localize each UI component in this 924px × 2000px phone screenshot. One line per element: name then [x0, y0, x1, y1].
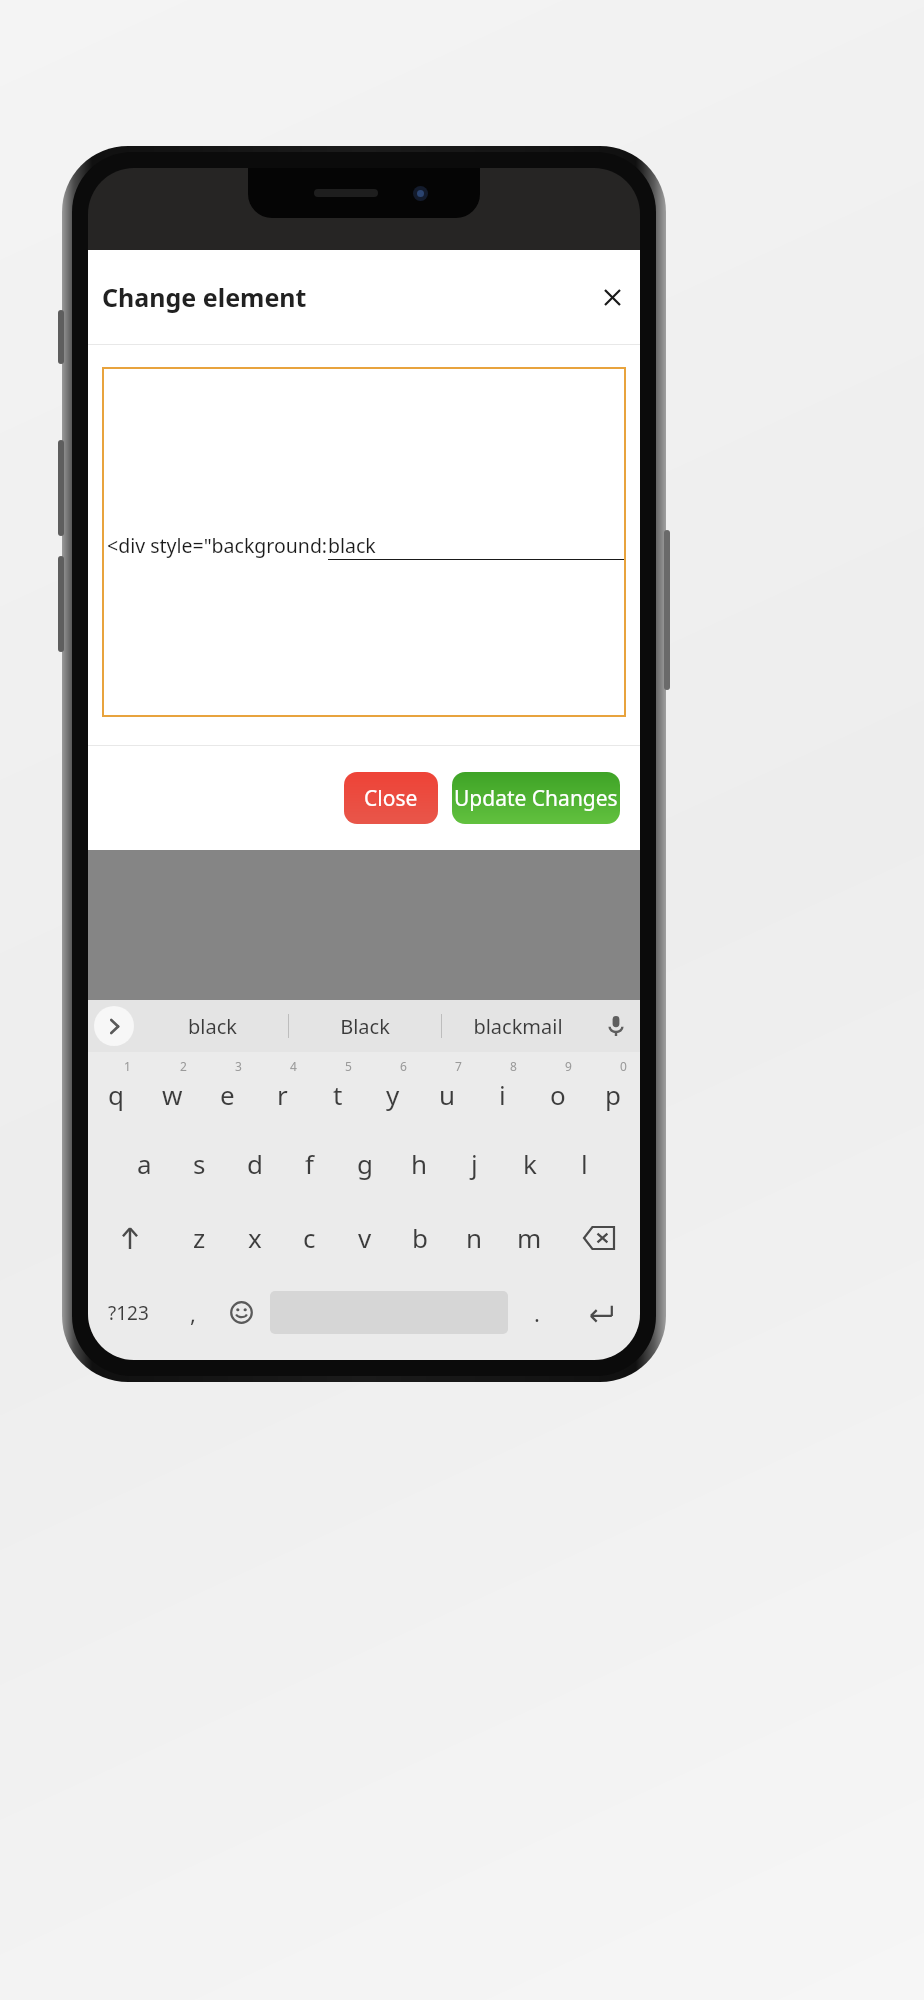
- staticText: ?123: [108, 1300, 149, 1326]
- staticText: m: [517, 1220, 542, 1255]
- staticText: v: [358, 1220, 372, 1255]
- staticText: black: [328, 532, 376, 559]
- button[interactable]: <div style="background:: [102, 367, 626, 717]
- button[interactable]: Voice input: [596, 1006, 636, 1046]
- button[interactable]: Black: [289, 1000, 441, 1052]
- button[interactable]: n: [447, 1200, 502, 1275]
- button[interactable]: Backspace: [557, 1200, 640, 1275]
- button[interactable]: 2: [144, 1052, 200, 1126]
- button[interactable]: a: [117, 1126, 172, 1200]
- staticText: g: [357, 1146, 373, 1181]
- staticText: a: [137, 1146, 152, 1181]
- button[interactable]: Close dialog: [590, 275, 634, 319]
- staticText: q: [108, 1077, 124, 1112]
- staticText: y: [386, 1077, 400, 1112]
- button[interactable]: h: [392, 1126, 447, 1200]
- staticText: Close: [364, 784, 418, 813]
- staticText: o: [550, 1077, 566, 1112]
- button[interactable]: Shift: [88, 1200, 172, 1275]
- staticText: 6: [400, 1058, 407, 1074]
- button[interactable]: s: [172, 1126, 227, 1200]
- staticText: j: [471, 1146, 478, 1181]
- staticText: black: [188, 1013, 237, 1040]
- staticText: 3: [235, 1058, 242, 1074]
- staticText: 9: [565, 1058, 572, 1074]
- staticText: s: [193, 1146, 206, 1181]
- staticText: t: [333, 1077, 343, 1112]
- staticText: w: [162, 1077, 183, 1112]
- button[interactable]: 1: [88, 1052, 144, 1126]
- staticText: 1: [124, 1058, 131, 1074]
- staticText: .: [534, 1298, 540, 1328]
- button[interactable]: .: [512, 1275, 561, 1350]
- button[interactable]: b: [392, 1200, 447, 1275]
- button[interactable]: j: [447, 1126, 502, 1200]
- button[interactable]: 3: [200, 1052, 255, 1126]
- staticText: ,: [190, 1298, 196, 1328]
- staticText: l: [581, 1146, 588, 1181]
- button[interactable]: v: [337, 1200, 392, 1275]
- staticText: p: [605, 1077, 621, 1112]
- button[interactable]: Enter: [561, 1275, 640, 1350]
- button[interactable]: k: [502, 1126, 557, 1200]
- button[interactable]: c: [282, 1200, 337, 1275]
- staticText: 7: [455, 1058, 462, 1074]
- button[interactable]: More suggestions: [94, 1006, 134, 1046]
- button[interactable]: Update Changes: [452, 772, 620, 824]
- staticText: d: [247, 1146, 263, 1181]
- button[interactable]: 9: [530, 1052, 585, 1126]
- staticText: x: [248, 1220, 262, 1255]
- button[interactable]: 4: [255, 1052, 310, 1126]
- staticText: i: [499, 1077, 506, 1112]
- staticText: n: [466, 1220, 483, 1255]
- staticText: blackmail: [473, 1013, 563, 1040]
- staticText: 0: [620, 1058, 627, 1074]
- staticText: u: [439, 1077, 456, 1112]
- staticText: z: [193, 1220, 206, 1255]
- button[interactable]: l: [557, 1126, 612, 1200]
- button[interactable]: black: [136, 1000, 288, 1052]
- button[interactable]: ,: [168, 1275, 217, 1350]
- staticText: 2: [180, 1058, 187, 1074]
- staticText: k: [523, 1146, 537, 1181]
- button[interactable]: 7: [420, 1052, 475, 1126]
- staticText: b: [412, 1220, 428, 1255]
- staticText: c: [303, 1220, 316, 1255]
- staticText: Black: [340, 1013, 390, 1040]
- button[interactable]: blackmail: [442, 1000, 594, 1052]
- staticText: h: [411, 1146, 428, 1181]
- button[interactable]: g: [337, 1126, 392, 1200]
- staticText: <div style="background:: [107, 532, 328, 559]
- staticText: Change element: [102, 280, 307, 314]
- staticText: f: [305, 1146, 314, 1181]
- button[interactable]: d: [227, 1126, 282, 1200]
- button[interactable]: 0: [585, 1052, 640, 1126]
- button[interactable]: ?123: [88, 1275, 168, 1350]
- button[interactable]: z: [172, 1200, 227, 1275]
- staticText: 8: [510, 1058, 517, 1074]
- button[interactable]: f: [282, 1126, 337, 1200]
- staticText: 4: [290, 1058, 297, 1074]
- button[interactable]: Emoji: [217, 1275, 266, 1350]
- staticText: e: [220, 1077, 235, 1112]
- staticText: 5: [345, 1058, 352, 1074]
- button[interactable]: x: [227, 1200, 282, 1275]
- button[interactable]: m: [502, 1200, 557, 1275]
- button[interactable]: Close: [344, 772, 438, 824]
- button[interactable]: 8: [475, 1052, 530, 1126]
- staticText: Update Changes: [454, 784, 618, 813]
- staticText: r: [277, 1077, 288, 1112]
- button[interactable]: 5: [310, 1052, 365, 1126]
- button[interactable]: 6: [365, 1052, 420, 1126]
